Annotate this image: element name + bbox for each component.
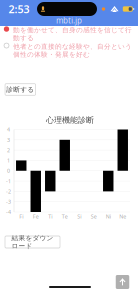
staticText: Ni [106,213,111,220]
staticText: -4 [6,208,11,216]
staticText: 心理機能診断 [46,115,94,125]
button[interactable]: 結果をダウンロード [5,236,60,248]
staticText: Fi [19,213,23,220]
staticText: Si [77,213,81,220]
staticText: 2:53 [8,2,29,16]
staticText: -3 [6,198,11,205]
staticText: -2 [6,188,11,195]
staticText: Ne [119,213,126,220]
staticText: 2 [7,147,10,154]
button[interactable]: 他者との直接的な経験や、自分という個性の体験・発展を好む [0,42,137,59]
staticText: 1 [7,157,10,164]
staticText: 4 [7,126,10,133]
staticText: 0 [7,167,10,174]
staticText: 結果をダウンロード [11,234,53,250]
button[interactable]: 動を働かせて、自身の感性を信じて行動する [0,26,137,42]
staticText: Se [91,213,97,220]
staticText: -1 [6,177,11,185]
button[interactable]: 診断する [5,84,36,95]
staticText: Fe [33,213,39,220]
staticText: 他者との直接的な経験や、自分という個性の体験・発展を好む [13,42,132,59]
button[interactable]: Scroll to top [116,275,129,289]
staticText: 動を働かせて、自身の感性を信じて行動する [13,26,132,42]
staticText: Ti [48,213,52,220]
staticText: 診断する [6,85,34,94]
staticText: 3 [7,136,10,143]
staticText: Te [62,213,68,220]
staticText: mbti.jp [56,15,82,26]
